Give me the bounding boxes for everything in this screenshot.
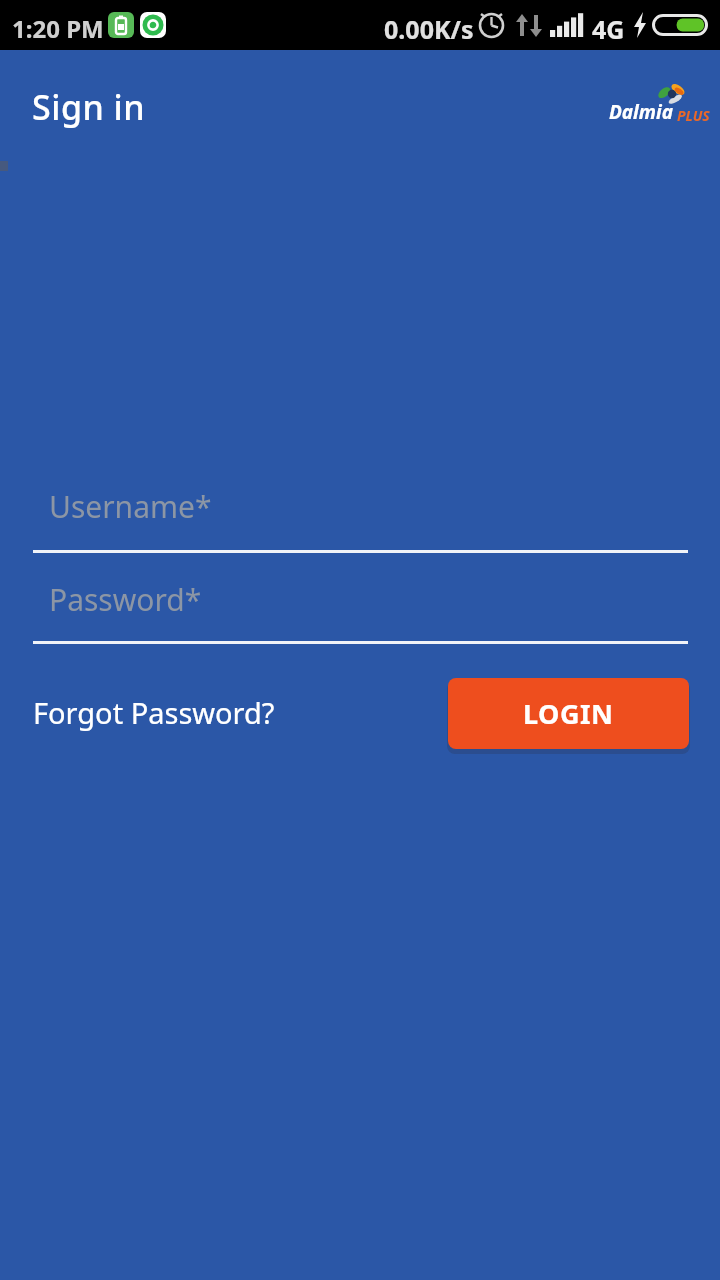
staticText: 1:20 PM [12,12,104,45]
button[interactable]: Forgot Password? [33,693,275,732]
button[interactable]: LOGIN [448,678,689,749]
staticText: Sign in [32,84,146,130]
staticText: Username* [49,486,212,527]
staticText: 4G [592,12,625,46]
staticText: Forgot Password? [33,693,275,732]
button[interactable]: Username* [33,470,688,553]
staticText: Password* [49,579,202,620]
button[interactable]: Dalmia [605,83,710,123]
staticText: Dalmia [609,99,673,125]
staticText: PLUS [677,106,710,125]
staticText: LOGIN [523,695,614,732]
button[interactable]: Password* [33,563,688,643]
staticText: 0.00K/s [384,12,474,46]
